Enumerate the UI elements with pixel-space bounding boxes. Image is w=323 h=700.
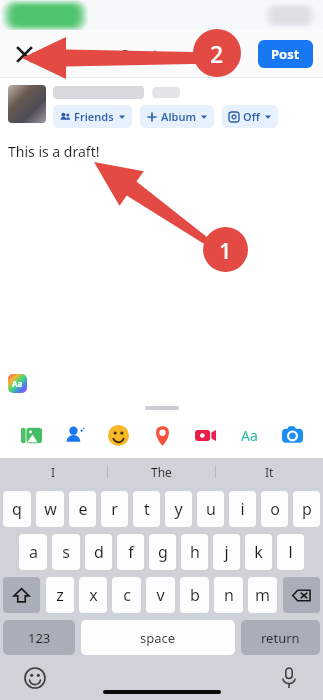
- staticText: The: [151, 464, 172, 480]
- staticText: Friends: [74, 109, 114, 124]
- button[interactable]: Dictation: [279, 668, 299, 688]
- staticText: g: [158, 541, 168, 563]
- staticText: 1: [219, 235, 232, 265]
- staticText: q: [12, 498, 22, 520]
- staticText: 2: [210, 38, 224, 69]
- staticText: d: [94, 541, 104, 563]
- staticText: m: [255, 584, 270, 606]
- button[interactable]: Check in: [145, 418, 179, 452]
- button[interactable]: p: [293, 491, 320, 527]
- button[interactable]: c: [112, 577, 141, 613]
- staticText: Album: [161, 109, 196, 124]
- button[interactable]: Live video: [188, 418, 222, 452]
- button[interactable]: v: [146, 577, 175, 613]
- button[interactable]: z: [46, 577, 74, 613]
- staticText: Create post: [119, 44, 204, 64]
- staticText: Off: [243, 109, 260, 124]
- staticText: Post: [271, 45, 300, 63]
- button[interactable]: Camera: [275, 418, 309, 452]
- staticText: space: [140, 629, 176, 647]
- button[interactable]: The: [108, 458, 215, 485]
- staticText: c: [123, 584, 131, 606]
- button[interactable]: f: [117, 534, 144, 570]
- button[interactable]: t: [133, 491, 160, 527]
- button[interactable]: l: [277, 534, 304, 570]
- staticText: l: [288, 541, 293, 563]
- button[interactable]: I: [0, 458, 107, 485]
- button[interactable]: m: [248, 577, 277, 613]
- staticText: h: [190, 541, 200, 563]
- button[interactable]: h: [181, 534, 208, 570]
- button[interactable]: Tag people: [57, 418, 91, 452]
- button[interactable]: Feeling: [101, 418, 135, 452]
- button[interactable]: Off: [222, 105, 278, 128]
- button[interactable]: 123: [3, 620, 75, 655]
- staticText: u: [206, 498, 216, 520]
- staticText: k: [254, 541, 263, 563]
- staticText: z: [56, 584, 64, 606]
- button[interactable]: y: [165, 491, 192, 527]
- button[interactable]: b: [180, 577, 209, 613]
- staticText: Aa: [12, 378, 23, 389]
- button[interactable]: a: [19, 534, 47, 570]
- staticText: return: [261, 629, 300, 647]
- staticText: w: [44, 498, 57, 520]
- button[interactable]: i: [229, 491, 256, 527]
- button[interactable]: o: [261, 491, 288, 527]
- button[interactable]: u: [197, 491, 224, 527]
- staticText: j: [224, 541, 229, 563]
- staticText: p: [302, 498, 312, 520]
- staticText: o: [270, 498, 280, 520]
- staticText: s: [62, 541, 70, 563]
- button[interactable]: d: [85, 534, 112, 570]
- button[interactable]: q: [3, 491, 31, 527]
- staticText: Aa: [241, 426, 258, 445]
- staticText: n: [224, 584, 234, 606]
- staticText: x: [89, 584, 98, 606]
- button[interactable]: space: [81, 620, 235, 655]
- button[interactable]: e: [69, 491, 96, 527]
- staticText: y: [174, 498, 183, 520]
- button[interactable]: Friends: [53, 105, 132, 128]
- staticText: I: [51, 464, 56, 480]
- button[interactable]: This is a draft!: [8, 142, 100, 161]
- button[interactable]: Photo: [14, 418, 48, 452]
- button[interactable]: k: [245, 534, 272, 570]
- staticText: v: [156, 584, 165, 606]
- button[interactable]: Shift: [3, 577, 40, 613]
- staticText: t: [144, 498, 150, 520]
- button[interactable]: return: [241, 620, 320, 655]
- staticText: a: [29, 541, 38, 563]
- button[interactable]: w: [36, 491, 64, 527]
- staticText: f: [128, 541, 134, 563]
- button[interactable]: Backspace: [283, 577, 320, 613]
- staticText: e: [78, 498, 88, 520]
- button[interactable]: r: [101, 491, 128, 527]
- button[interactable]: Post: [258, 40, 313, 68]
- button[interactable]: Text style app: [8, 374, 27, 393]
- button[interactable]: x: [79, 577, 107, 613]
- staticText: b: [190, 584, 200, 606]
- button[interactable]: n: [214, 577, 243, 613]
- button[interactable]: s: [52, 534, 80, 570]
- staticText: r: [111, 498, 118, 520]
- button[interactable]: g: [149, 534, 176, 570]
- button[interactable]: Emoji: [24, 667, 46, 689]
- staticText: 123: [28, 629, 51, 647]
- button[interactable]: Album: [140, 105, 214, 128]
- button[interactable]: Close: [6, 36, 42, 72]
- button[interactable]: It: [216, 458, 323, 485]
- staticText: It: [265, 464, 274, 480]
- button[interactable]: j: [213, 534, 240, 570]
- button[interactable]: Text style: [232, 418, 266, 452]
- staticText: i: [240, 498, 245, 520]
